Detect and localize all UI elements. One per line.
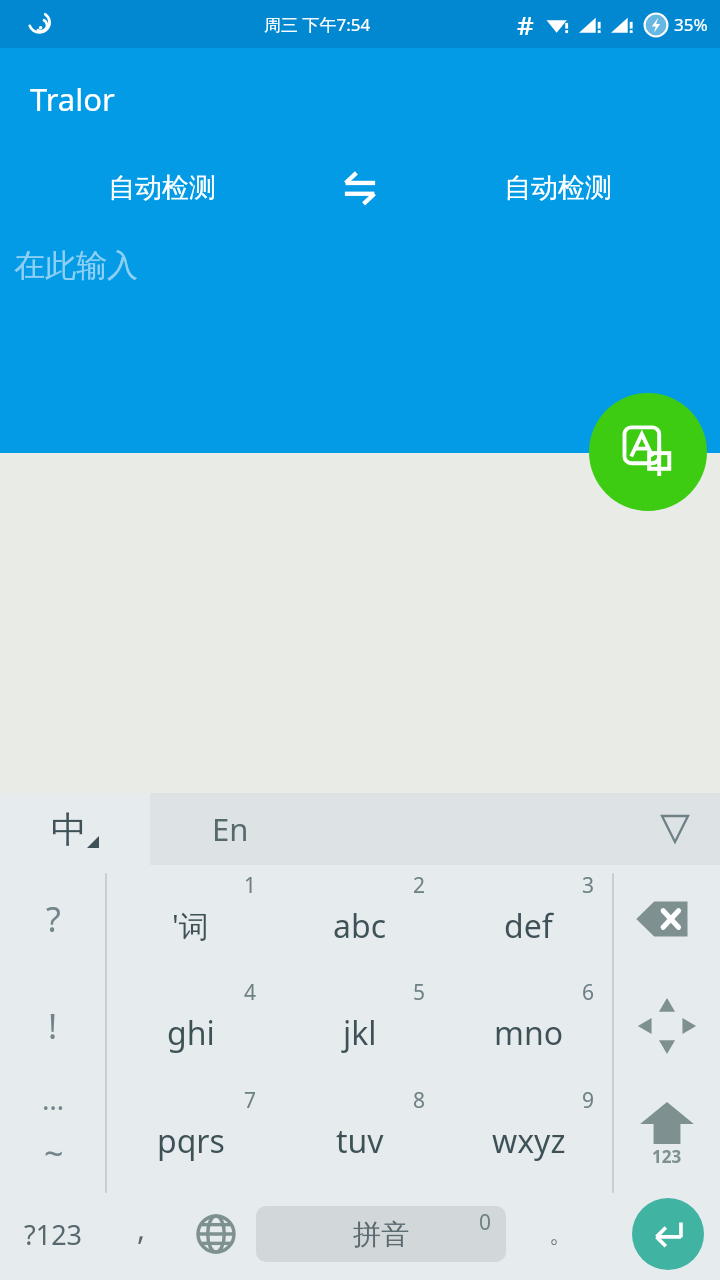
button[interactable]: 在此输入	[0, 246, 720, 453]
staticText: 自动检测	[504, 171, 612, 205]
button[interactable]: ghi	[106, 972, 275, 1080]
staticText: 123	[652, 1145, 682, 1168]
staticText: 自动检测	[108, 171, 216, 205]
button[interactable]: 拼音	[256, 1206, 506, 1262]
staticText: ?123	[24, 1216, 83, 1253]
button[interactable]: pqrs	[106, 1080, 275, 1188]
button[interactable]: ?	[0, 865, 106, 972]
button[interactable]: Enter	[616, 1188, 720, 1280]
staticText: 3	[582, 871, 595, 900]
staticText: ghi	[167, 1011, 215, 1055]
staticText: def	[504, 904, 553, 948]
staticText: '词	[172, 905, 209, 946]
button[interactable]: 自动检测	[0, 158, 324, 218]
other: Backspace	[635, 896, 699, 942]
button[interactable]: '词	[106, 865, 275, 972]
button[interactable]: mno	[444, 972, 613, 1080]
staticText: ~	[44, 1130, 64, 1176]
staticText: ,	[137, 1208, 146, 1249]
staticText: pqrs	[157, 1119, 225, 1163]
button[interactable]: Chinese input	[0, 793, 150, 865]
button[interactable]: Backspace	[613, 865, 720, 972]
button[interactable]: abc	[275, 865, 444, 972]
button[interactable]: jkl	[275, 972, 444, 1080]
other: Move cursor	[636, 995, 698, 1057]
staticText: 1	[244, 871, 257, 900]
staticText: 35%	[674, 13, 708, 36]
staticText: Tralor	[30, 78, 115, 120]
staticText: 4	[244, 978, 257, 1007]
button[interactable]: Change keyboard	[176, 1188, 256, 1280]
button[interactable]: ?123	[0, 1188, 106, 1280]
staticText: 0	[479, 1208, 492, 1237]
button[interactable]: !	[0, 972, 106, 1080]
staticText: 8	[413, 1086, 426, 1115]
button[interactable]: Translate	[589, 393, 707, 511]
staticText: 5	[413, 978, 426, 1007]
button[interactable]: wxyz	[444, 1080, 613, 1188]
staticText: 周三 下午7:54	[264, 13, 371, 36]
button[interactable]: 。	[506, 1188, 616, 1280]
button[interactable]: En	[150, 793, 720, 865]
other: Shift to numbers	[639, 1101, 695, 1168]
staticText: 。	[549, 1219, 573, 1249]
staticText: 在此输入	[14, 246, 138, 285]
staticText: #	[517, 7, 534, 42]
button[interactable]: Swap languages	[324, 152, 396, 224]
button[interactable]: …	[0, 1080, 106, 1188]
staticText: ?	[46, 896, 61, 942]
button[interactable]: ,	[106, 1188, 176, 1280]
staticText: 7	[244, 1086, 257, 1115]
button[interactable]: Shift to numbers	[613, 1080, 720, 1188]
staticText: tuv	[336, 1119, 384, 1163]
staticText: jkl	[343, 1011, 377, 1055]
staticText: 9	[582, 1086, 595, 1115]
staticText: abc	[333, 904, 386, 948]
staticText: En	[212, 808, 249, 850]
staticText: 中	[51, 807, 87, 852]
staticText: !	[48, 1003, 58, 1049]
staticText: mno	[494, 1011, 564, 1055]
staticText: 拼音	[353, 1217, 409, 1252]
staticText: wxyz	[492, 1119, 566, 1163]
staticText: …	[42, 1080, 65, 1118]
button[interactable]: tuv	[275, 1080, 444, 1188]
staticText: 2	[413, 871, 426, 900]
button[interactable]: Move cursor	[613, 972, 720, 1080]
button[interactable]: def	[444, 865, 613, 972]
staticText: 6	[582, 978, 595, 1007]
button[interactable]: 自动检测	[396, 158, 720, 218]
